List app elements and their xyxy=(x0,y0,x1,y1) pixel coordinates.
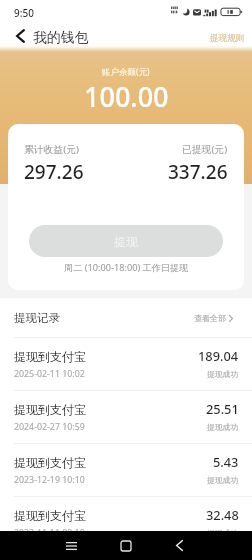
staticText: 提现到支付宝 xyxy=(14,455,86,470)
staticText: 2023-12-19 10:10 xyxy=(14,474,85,486)
staticText: 5.43 xyxy=(213,453,239,470)
staticText: 周二 (10:00-18:00) 工作日提现 xyxy=(64,261,189,274)
button[interactable]: 提现到支付宝 xyxy=(0,337,252,390)
staticText: 25.51 xyxy=(206,400,239,417)
staticText: 2024-02-27 10:59 xyxy=(14,421,85,433)
button[interactable]: 提现到支付宝 xyxy=(0,390,252,443)
button[interactable]: 提现到支付宝 xyxy=(0,496,252,549)
staticText: 提现到支付宝 xyxy=(14,402,86,417)
staticText: 提现成功 xyxy=(207,528,239,538)
staticText: 提现到支付宝 xyxy=(14,508,86,523)
button[interactable]: 提现规则 xyxy=(198,26,252,49)
staticText: 提现成功 xyxy=(207,422,239,432)
button[interactable]: Back xyxy=(0,24,34,50)
staticText: 提现记录 xyxy=(14,311,60,325)
staticText: 189.04 xyxy=(198,347,239,364)
button[interactable]: 提现 xyxy=(29,225,223,257)
button[interactable]: Back xyxy=(164,531,194,560)
staticText: 我的钱包 xyxy=(33,29,89,46)
button[interactable]: 查看全部 xyxy=(194,307,233,329)
staticText: 2023-11-11 09:10 xyxy=(14,527,85,539)
staticText: 337.26 xyxy=(168,159,228,185)
staticText: 提现 xyxy=(114,234,138,249)
button[interactable]: Recents xyxy=(56,531,86,560)
staticText: 提现到支付宝 xyxy=(14,349,86,364)
staticText: 提现成功 xyxy=(207,475,239,485)
staticText: 2025-02-11 10:02 xyxy=(14,368,85,380)
staticText: 已提现(元) xyxy=(182,143,228,156)
staticText: 账户余额(元) xyxy=(102,66,150,78)
staticText: 查看全部 xyxy=(194,313,226,323)
staticText: 100.00 xyxy=(84,78,169,115)
staticText: 提现成功 xyxy=(207,369,239,379)
staticText: 32.48 xyxy=(206,506,239,523)
staticText: 9:50 xyxy=(14,6,34,20)
staticText: 297.26 xyxy=(24,159,84,185)
button[interactable]: 提现到支付宝 xyxy=(0,443,252,496)
staticText: 提现规则 xyxy=(210,33,244,44)
button[interactable]: Home xyxy=(111,531,141,560)
staticText: 累计收益(元) xyxy=(24,143,79,156)
